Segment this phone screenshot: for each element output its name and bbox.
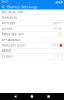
staticText: Highlight colour xyxy=(2,44,26,47)
staticText: APPEARANCE xyxy=(2,38,20,42)
staticText: Version xyxy=(2,55,13,58)
button[interactable]: Badge app icon xyxy=(0,32,64,37)
staticText: Sounds xyxy=(2,27,12,30)
staticText: 2.4.1 xyxy=(54,55,62,58)
button[interactable]: Alert style xyxy=(0,21,64,26)
button[interactable]: Highlight colour xyxy=(0,43,64,48)
staticText: Badge app icon xyxy=(2,32,24,36)
button[interactable]: Home xyxy=(31,95,33,98)
staticText: Banner xyxy=(52,21,62,25)
staticText: NOTIFICATIONS xyxy=(2,10,23,14)
button[interactable]: Back xyxy=(14,95,16,98)
staticText: Red xyxy=(52,44,58,47)
staticText: On xyxy=(58,32,62,36)
staticText: Bonus Settings xyxy=(7,4,37,9)
button[interactable]: Sounds xyxy=(0,26,64,31)
button[interactable]: Show alerts xyxy=(0,15,64,20)
staticText: Show alerts xyxy=(2,16,17,19)
staticText: Alert style xyxy=(2,21,16,25)
staticText: 9:41 xyxy=(2,0,9,4)
staticText: Chime xyxy=(53,27,62,30)
staticText: ABOUT xyxy=(2,49,12,53)
button[interactable]: Version xyxy=(0,54,64,59)
button[interactable]: Recent apps xyxy=(47,95,50,98)
button[interactable]: Back xyxy=(2,5,5,8)
